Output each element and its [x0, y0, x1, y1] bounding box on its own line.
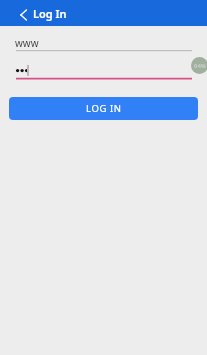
button[interactable]: [16, 63, 192, 81]
button[interactable]: Battery 64 percent: [191, 57, 207, 74]
staticText: Log In: [33, 6, 67, 21]
staticText: 64%: [194, 62, 206, 70]
button[interactable]: LOG IN: [9, 97, 198, 120]
staticText: LOG IN: [86, 102, 122, 115]
button[interactable]: Navigate up: [11, 2, 37, 28]
button[interactable]: www: [16, 34, 192, 52]
staticText: www: [15, 36, 39, 50]
